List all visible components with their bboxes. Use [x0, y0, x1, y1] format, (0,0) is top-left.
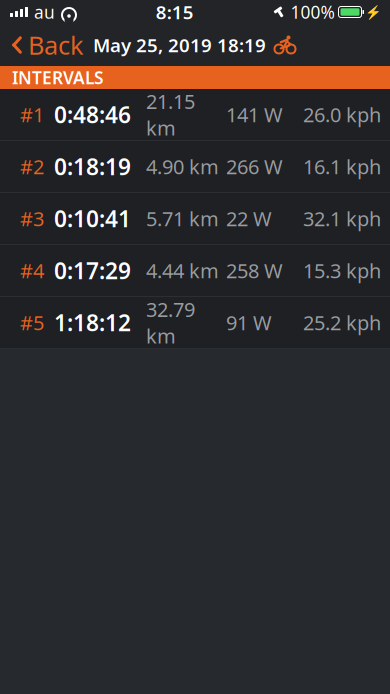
- staticText: 25.2 kph: [303, 309, 381, 336]
- button[interactable]: #5: [0, 297, 390, 348]
- staticText: 22 W: [226, 205, 272, 232]
- staticText: 0:48:46: [54, 99, 131, 129]
- button[interactable]: #3: [0, 193, 390, 244]
- button[interactable]: #4: [0, 245, 390, 296]
- staticText: 26.0 kph: [303, 101, 381, 128]
- staticText: May 25, 2019 18:19: [93, 33, 266, 57]
- staticText: 15.3 kph: [303, 257, 381, 284]
- staticText: INTERVALS: [12, 66, 104, 89]
- staticText: 258 W: [226, 257, 283, 284]
- staticText: 141 W: [226, 101, 283, 128]
- staticText: 91 W: [226, 309, 272, 336]
- staticText: 0:10:41: [54, 203, 131, 233]
- staticText: Back: [28, 28, 84, 62]
- staticText: au: [34, 0, 55, 23]
- staticText: #5: [20, 309, 44, 336]
- staticText: 266 W: [226, 153, 283, 180]
- staticText: #1: [20, 101, 44, 128]
- staticText: 4.44 km: [146, 257, 219, 284]
- staticText: 0:17:29: [54, 255, 131, 285]
- staticText: #3: [20, 205, 44, 232]
- staticText: 32.79 km: [146, 296, 195, 349]
- button[interactable]: Back: [0, 22, 84, 68]
- staticText: 21.15 km: [146, 88, 195, 141]
- staticText: 100%: [290, 0, 334, 23]
- staticText: #4: [20, 257, 44, 284]
- staticText: 0:18:19: [54, 151, 131, 181]
- staticText: 1:18:12: [54, 307, 131, 337]
- staticText: 5.71 km: [146, 205, 219, 232]
- staticText: 4.90 km: [146, 153, 219, 180]
- staticText: #2: [20, 153, 44, 180]
- button[interactable]: #1: [0, 89, 390, 140]
- staticText: 16.1 kph: [303, 153, 381, 180]
- staticText: 32.1 kph: [303, 205, 381, 232]
- staticText: 8:15: [156, 0, 194, 24]
- button[interactable]: #2: [0, 141, 390, 192]
- staticText: ⚡: [365, 4, 382, 20]
